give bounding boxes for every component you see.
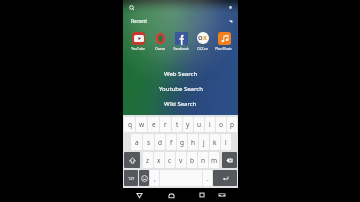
staticText: n [201,156,206,165]
staticText: w [139,120,145,129]
button[interactable]: f [166,134,176,150]
staticText: OLX.ro [197,46,208,50]
staticText: O [198,34,203,42]
button[interactable]: i [205,117,215,132]
staticText: Facebook [173,46,189,50]
staticText: 12? [128,176,135,181]
staticText: x [157,156,161,165]
staticText: , [154,174,156,183]
button[interactable]: Shift [124,152,140,168]
button[interactable]: Youtube Search [123,84,238,94]
other: Voice search [228,5,233,10]
button[interactable]: y [183,117,193,132]
button[interactable]: g [177,134,187,150]
staticText: k [213,138,217,147]
staticText: i [209,120,211,129]
button[interactable]: m [209,152,219,168]
staticText: Play Music [215,46,232,50]
staticText: Recent [131,18,148,25]
button[interactable]: Voice search [123,0,238,13]
button[interactable]: k [210,134,220,150]
staticText: q [128,120,132,129]
button[interactable]: Recents [195,188,209,202]
staticText: p [230,120,234,129]
button[interactable]: l [221,134,231,150]
staticText: d [158,138,162,147]
button[interactable]: e [148,117,159,132]
staticText: Youtube Search [159,85,203,93]
button[interactable]: o [216,117,226,132]
button[interactable]: v [176,152,186,168]
button[interactable]: s [143,134,154,150]
button[interactable]: r [160,117,171,132]
button[interactable]: j [199,134,209,150]
staticText: v [179,156,183,165]
staticText: g [180,138,184,147]
button[interactable]: Emoji [139,170,149,186]
staticText: t [176,120,179,129]
button[interactable]: x [154,152,164,168]
button[interactable]: z [143,152,153,168]
button[interactable]: a [131,134,142,150]
button[interactable]: Home [164,188,178,202]
button[interactable]: Opera [149,26,170,50]
button[interactable]: w [136,117,147,132]
staticText: j [203,138,205,147]
button[interactable]: . [203,170,212,186]
button[interactable]: p [227,117,237,132]
staticText: YouTube [131,46,145,50]
staticText: c [168,156,172,165]
button[interactable]: Web Search [123,69,238,79]
button[interactable]: Play Music [213,26,234,50]
button[interactable]: Switch keyboard [215,188,229,202]
staticText: m [211,156,218,165]
button[interactable]: Enter [213,170,237,186]
staticText: o [219,120,223,129]
staticText: . [207,174,209,183]
staticText: h [191,138,196,147]
staticText: Web Search [164,70,198,78]
staticText: X [203,34,208,42]
staticText: e [152,120,156,129]
button[interactable]: O [192,26,213,50]
staticText: s [147,138,151,147]
button[interactable]: c [165,152,175,168]
button[interactable]: h [188,134,198,150]
staticText: z [146,156,150,165]
button[interactable]: Symbols [124,170,138,186]
other: Collapse [228,19,233,24]
staticText: Wiki Search [164,100,197,108]
button[interactable]: n [198,152,208,168]
button[interactable]: YouTube [127,26,148,50]
button[interactable]: u [194,117,204,132]
button[interactable]: t [172,117,182,132]
button[interactable]: q [124,117,135,132]
button[interactable]: , [150,170,159,186]
button[interactable]: Facebook [170,26,191,50]
staticText: r [164,120,167,129]
staticText: f [170,138,173,147]
button[interactable]: Backspace [222,152,237,168]
button[interactable]: Back [132,188,146,202]
button[interactable]: Wiki Search [123,99,238,109]
button[interactable]: b [187,152,197,168]
staticText: u [197,120,202,129]
staticText: a [135,138,139,147]
staticText: y [186,120,190,129]
staticText: b [190,156,194,165]
button[interactable]: d [155,134,165,150]
staticText: Opera [155,46,165,50]
staticText: l [225,138,227,147]
